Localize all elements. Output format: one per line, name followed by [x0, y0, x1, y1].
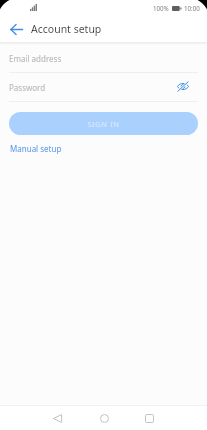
staticText: 10:00 — [184, 4, 200, 12]
staticText: 100% — [153, 4, 169, 12]
button[interactable]: Email address — [0, 43, 207, 73]
staticText: Email address — [9, 53, 62, 64]
staticText: Password — [9, 82, 46, 93]
button[interactable]: Manual setup — [10, 143, 62, 154]
button[interactable]: Show password — [174, 77, 192, 95]
button[interactable]: SIGN IN — [9, 112, 198, 135]
button[interactable]: Password — [0, 73, 207, 102]
button[interactable]: Navigate up — [0, 15, 31, 43]
button[interactable]: Recent apps — [138, 407, 160, 429]
button[interactable]: Back — [46, 407, 68, 429]
staticText: Account setup — [31, 22, 102, 36]
button[interactable]: Home — [93, 407, 115, 429]
staticText: SIGN IN — [87, 119, 120, 129]
staticText: Manual setup — [10, 143, 62, 154]
